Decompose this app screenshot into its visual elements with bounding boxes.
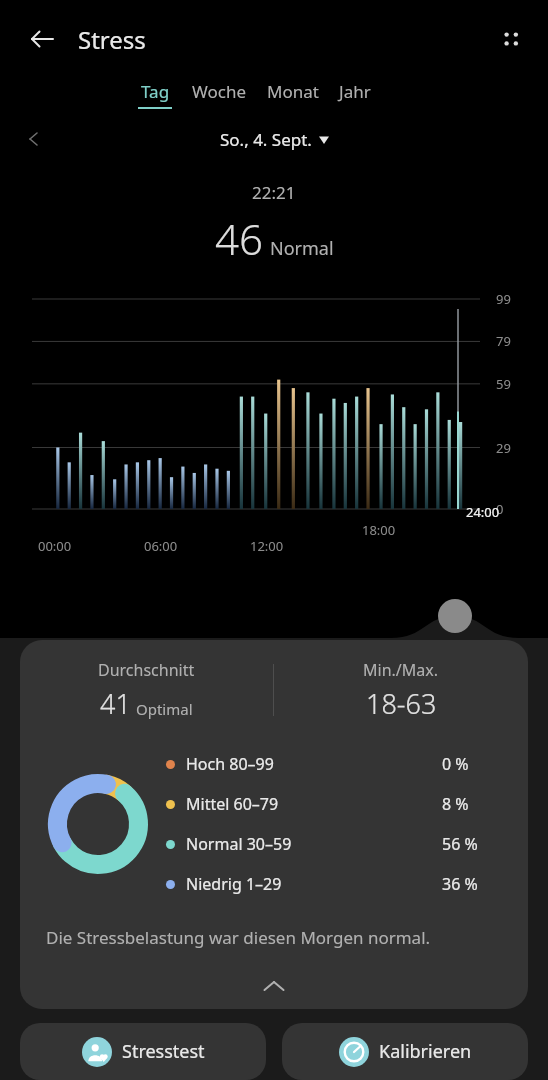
staticText: Stress <box>78 23 146 56</box>
staticText: Normal <box>270 236 334 261</box>
button[interactable]: Woche <box>182 78 257 109</box>
staticText: Monat <box>267 80 319 103</box>
staticText: 46 <box>215 210 263 267</box>
staticText: 18-63 <box>366 685 437 722</box>
staticText: Min./Max. <box>363 659 439 681</box>
button[interactable]: More options <box>488 16 534 62</box>
staticText: 59 <box>496 375 511 393</box>
button[interactable]: Stresstest <box>20 1023 266 1080</box>
button[interactable]: Collapse <box>20 971 528 1001</box>
staticText: So., 4. Sept. <box>220 128 312 151</box>
button[interactable]: Previous day <box>14 119 54 159</box>
staticText: 0 <box>496 500 504 518</box>
staticText: Niedrig 1–29 <box>186 873 442 895</box>
button[interactable]: Tag <box>128 78 182 111</box>
staticText: Die Stressbelastung war diesen Morgen no… <box>46 926 431 949</box>
button[interactable]: Mittel 60–79 <box>166 784 504 824</box>
staticText: 36 % <box>442 873 504 895</box>
button[interactable]: Kalibrieren <box>282 1023 528 1080</box>
staticText: Stresstest <box>122 1039 205 1064</box>
staticText: Optimal <box>136 699 193 719</box>
staticText: 56 % <box>442 833 504 855</box>
staticText: Jahr <box>339 80 371 103</box>
staticText: Tag <box>141 80 170 103</box>
staticText: 18:00 <box>362 521 396 539</box>
staticText: 29 <box>496 439 511 457</box>
staticText: Durchschnitt <box>98 659 195 681</box>
button[interactable]: Durchschnitt <box>20 640 528 1009</box>
staticText: Woche <box>192 80 247 103</box>
staticText: Normal 30–59 <box>186 833 442 855</box>
staticText: 99 <box>496 290 511 308</box>
button[interactable]: Jahr <box>329 78 381 109</box>
button[interactable]: So., 4. Sept. <box>212 124 337 155</box>
staticText: 41 <box>100 685 131 722</box>
staticText: 00:00 <box>38 537 72 555</box>
staticText: 12:00 <box>250 537 284 555</box>
button[interactable]: Normal 30–59 <box>166 824 504 864</box>
staticText: 22:21 <box>252 181 296 204</box>
button[interactable]: Back <box>20 17 64 61</box>
staticText: Hoch 80–99 <box>186 753 442 775</box>
staticText: 0 % <box>442 753 504 775</box>
button[interactable]: Niedrig 1–29 <box>166 864 504 904</box>
staticText: 8 % <box>442 793 504 815</box>
staticText: Mittel 60–79 <box>186 793 442 815</box>
button[interactable]: Monat <box>257 78 329 109</box>
staticText: 79 <box>496 332 511 350</box>
button[interactable]: Hoch 80–99 <box>166 744 504 784</box>
staticText: Kalibrieren <box>379 1039 472 1064</box>
staticText: 24:00 <box>466 503 500 521</box>
staticText: 06:00 <box>144 537 178 555</box>
